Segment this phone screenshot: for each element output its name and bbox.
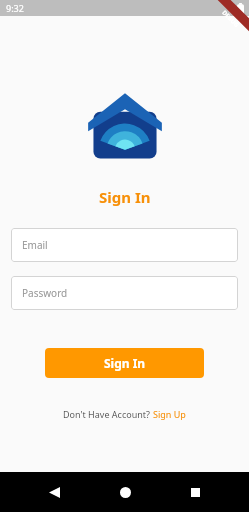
button[interactable]: Password bbox=[11, 276, 238, 310]
staticText: 9:32 bbox=[6, 2, 24, 14]
button[interactable]: Back bbox=[37, 475, 71, 509]
staticText: Sign Up bbox=[153, 408, 186, 420]
button[interactable]: Sign Up bbox=[153, 408, 186, 420]
staticText: Email bbox=[22, 238, 48, 252]
staticText: Sign In bbox=[99, 187, 151, 207]
button[interactable]: Email bbox=[11, 228, 238, 262]
button[interactable]: Home bbox=[108, 475, 142, 509]
staticText: Password bbox=[22, 286, 68, 300]
staticText: Sign In bbox=[104, 355, 146, 371]
staticText: Don't Have Account? bbox=[63, 408, 153, 420]
button[interactable]: Sign In bbox=[45, 348, 204, 378]
button[interactable]: Recent apps bbox=[178, 475, 212, 509]
staticText: DEBUG bbox=[220, 9, 241, 29]
